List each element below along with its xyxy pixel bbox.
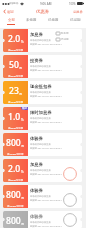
staticText: 出借成功后自动生效 [30, 65, 51, 68]
staticText: 800 [6, 189, 21, 201]
staticText: 返回 [7, 10, 14, 14]
staticText: 出借成功后自动生效 [30, 117, 51, 120]
staticText: 有效期 2017.01.01-2017.03.31 [30, 147, 62, 150]
staticText: 2.0 [8, 33, 21, 45]
staticText: 未使用 [26, 18, 37, 22]
staticText: 有效期 2017.01.01-2017.03.31 [30, 199, 62, 202]
button[interactable]: 800 [3, 185, 82, 208]
staticText: 出借成功后自动生效 [30, 221, 51, 224]
button[interactable]: 800 [3, 133, 82, 156]
staticText: 有效期 2017.01.01-2017.03.31 [30, 225, 62, 228]
button[interactable]: 已过期 [64, 16, 86, 28]
staticText: 投资券 [30, 58, 43, 63]
staticText: 有效期 2017.01.01-2017.03.31 [30, 69, 62, 72]
button[interactable]: 兑换券 [73, 10, 83, 14]
staticText: 9:06 AM [40, 2, 52, 6]
staticText: 有效期 2017.01.01-2017.03.31 [30, 95, 62, 98]
staticText: 23 [9, 85, 19, 97]
staticText: 出借成功后自动生效 [30, 91, 51, 94]
button[interactable]: 2.0 [3, 29, 82, 52]
staticText: 满5000元可用 [8, 48, 24, 51]
staticText: 现金抵扣券 [30, 84, 52, 89]
staticText: 1.0 [8, 111, 21, 123]
staticText: 限时 [22, 107, 27, 110]
staticText: 优惠券 [36, 9, 50, 15]
staticText: 满10000元可用 [7, 152, 24, 155]
staticText: 出借成功后自动生效 [30, 169, 51, 172]
staticText: 满1000元可用 [8, 100, 24, 103]
button[interactable]: 2.0 [3, 159, 82, 182]
button[interactable]: 已使用 [42, 16, 64, 28]
staticText: 已过期 [70, 18, 81, 22]
staticText: % [21, 40, 24, 44]
staticText: 元 [19, 66, 23, 70]
staticText: 体验券 [30, 136, 43, 141]
staticText: 中国移动 [9, 2, 19, 5]
staticText: 已使用 [48, 18, 59, 22]
staticText: 兑换券 [73, 10, 83, 14]
staticText: 有效期 2017.01.01-2017.03.31 [30, 43, 62, 46]
button[interactable]: 50 [3, 55, 82, 78]
staticText: 满3000元可用 [8, 74, 24, 77]
staticText: 出借成功后自动生效 [30, 143, 51, 146]
staticText: 元 [21, 196, 25, 200]
staticText: 体验券 [30, 188, 43, 193]
staticText: % [21, 118, 24, 122]
staticText: 体验券 [30, 214, 43, 219]
staticText: 800 [6, 137, 21, 149]
staticText: 加息券 [30, 162, 43, 167]
staticText: 全部 [8, 18, 15, 22]
staticText: 秒杀用 [61, 32, 69, 35]
staticText: 满10000元可用 [7, 204, 24, 207]
button[interactable]: 全部 [0, 16, 21, 28]
staticText: 限时加息券 [30, 110, 52, 115]
button[interactable]: Back [2, 9, 15, 14]
staticText: 800 [6, 215, 21, 227]
staticText: 满5000元可用 [8, 178, 24, 181]
staticText: 出借成功后自动生效 [30, 195, 51, 198]
staticText: 有效期 2017.01.01-2017.03.31 [30, 121, 62, 124]
staticText: 100% [69, 2, 76, 6]
button[interactable]: 800 [3, 211, 82, 228]
button[interactable]: 未使用 [21, 16, 42, 28]
staticText: % [21, 170, 24, 174]
staticText: 已过期 [61, 38, 69, 41]
staticText: 出借成功后自动生效 [30, 39, 51, 42]
button[interactable]: 23 [3, 81, 82, 104]
staticText: 元 [21, 144, 25, 148]
staticText: 有效期 2017.01.01-2017.03.31 [30, 173, 62, 176]
staticText: 50 [9, 59, 19, 71]
staticText: 2.0 [8, 163, 21, 175]
staticText: 加息券 [30, 32, 43, 37]
staticText: 满2000元可用 [8, 126, 24, 129]
staticText: 元 [21, 222, 25, 226]
button[interactable]: 1.0 [3, 107, 82, 130]
staticText: 元 [19, 92, 23, 96]
